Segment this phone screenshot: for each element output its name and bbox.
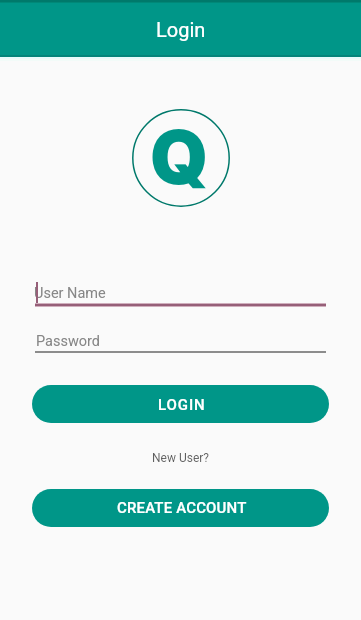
staticText: LOGIN <box>158 396 206 414</box>
button[interactable]: LOGIN <box>32 385 329 423</box>
staticText: Password <box>36 333 101 350</box>
button[interactable]: User Name <box>35 277 326 307</box>
staticText: CREATE ACCOUNT <box>117 499 247 517</box>
staticText: New User? <box>152 451 209 465</box>
staticText: Q <box>150 112 209 202</box>
staticText: User Name <box>34 285 106 302</box>
button[interactable]: Password <box>35 330 326 355</box>
button[interactable]: New User? <box>120 447 241 469</box>
button[interactable]: CREATE ACCOUNT <box>32 489 329 527</box>
staticText: Login <box>156 18 206 41</box>
